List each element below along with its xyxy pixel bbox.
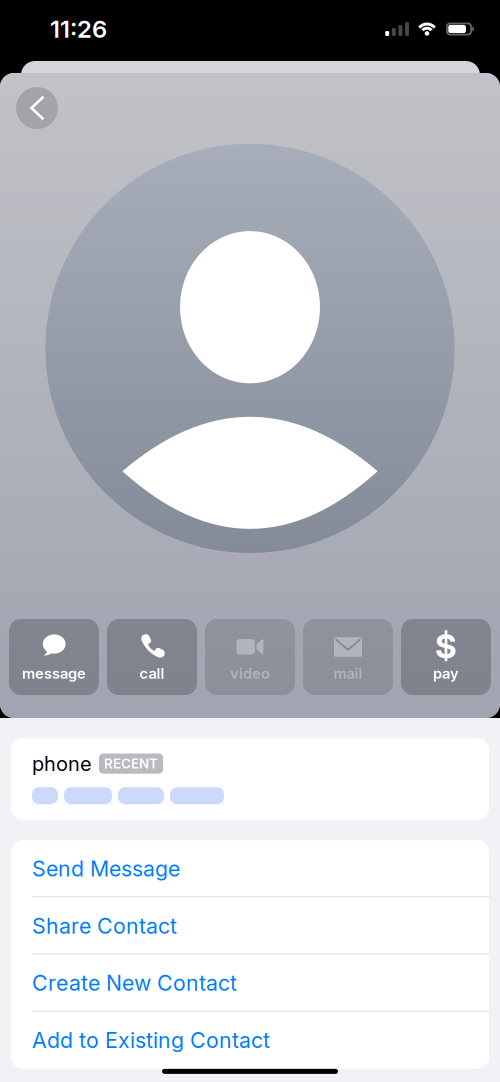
staticText: RECENT <box>104 755 158 772</box>
button[interactable]: Send Message <box>11 840 489 897</box>
button[interactable]: message <box>9 619 99 695</box>
staticText: Share Contact <box>32 913 177 939</box>
staticText: call <box>139 665 164 682</box>
staticText: 11:26 <box>50 14 107 43</box>
button[interactable]: Create New Contact <box>11 954 489 1012</box>
button[interactable]: mail <box>303 619 393 695</box>
staticText: message <box>22 665 86 682</box>
staticText: Send Message <box>32 856 180 882</box>
staticText: pay <box>433 665 459 682</box>
button[interactable]: Back <box>16 87 58 129</box>
staticText: Add to Existing Contact <box>32 1027 270 1053</box>
button[interactable]: call <box>107 619 197 695</box>
button[interactable]: $ <box>401 619 491 695</box>
staticText: mail <box>333 665 362 682</box>
staticText: Create New Contact <box>32 970 237 996</box>
button[interactable]: Share Contact <box>11 897 489 954</box>
button[interactable]: video <box>205 619 295 695</box>
button[interactable]: Add to Existing Contact <box>11 1012 489 1069</box>
staticText: $ <box>435 626 457 666</box>
staticText: phone <box>32 751 92 776</box>
staticText: video <box>230 665 270 682</box>
